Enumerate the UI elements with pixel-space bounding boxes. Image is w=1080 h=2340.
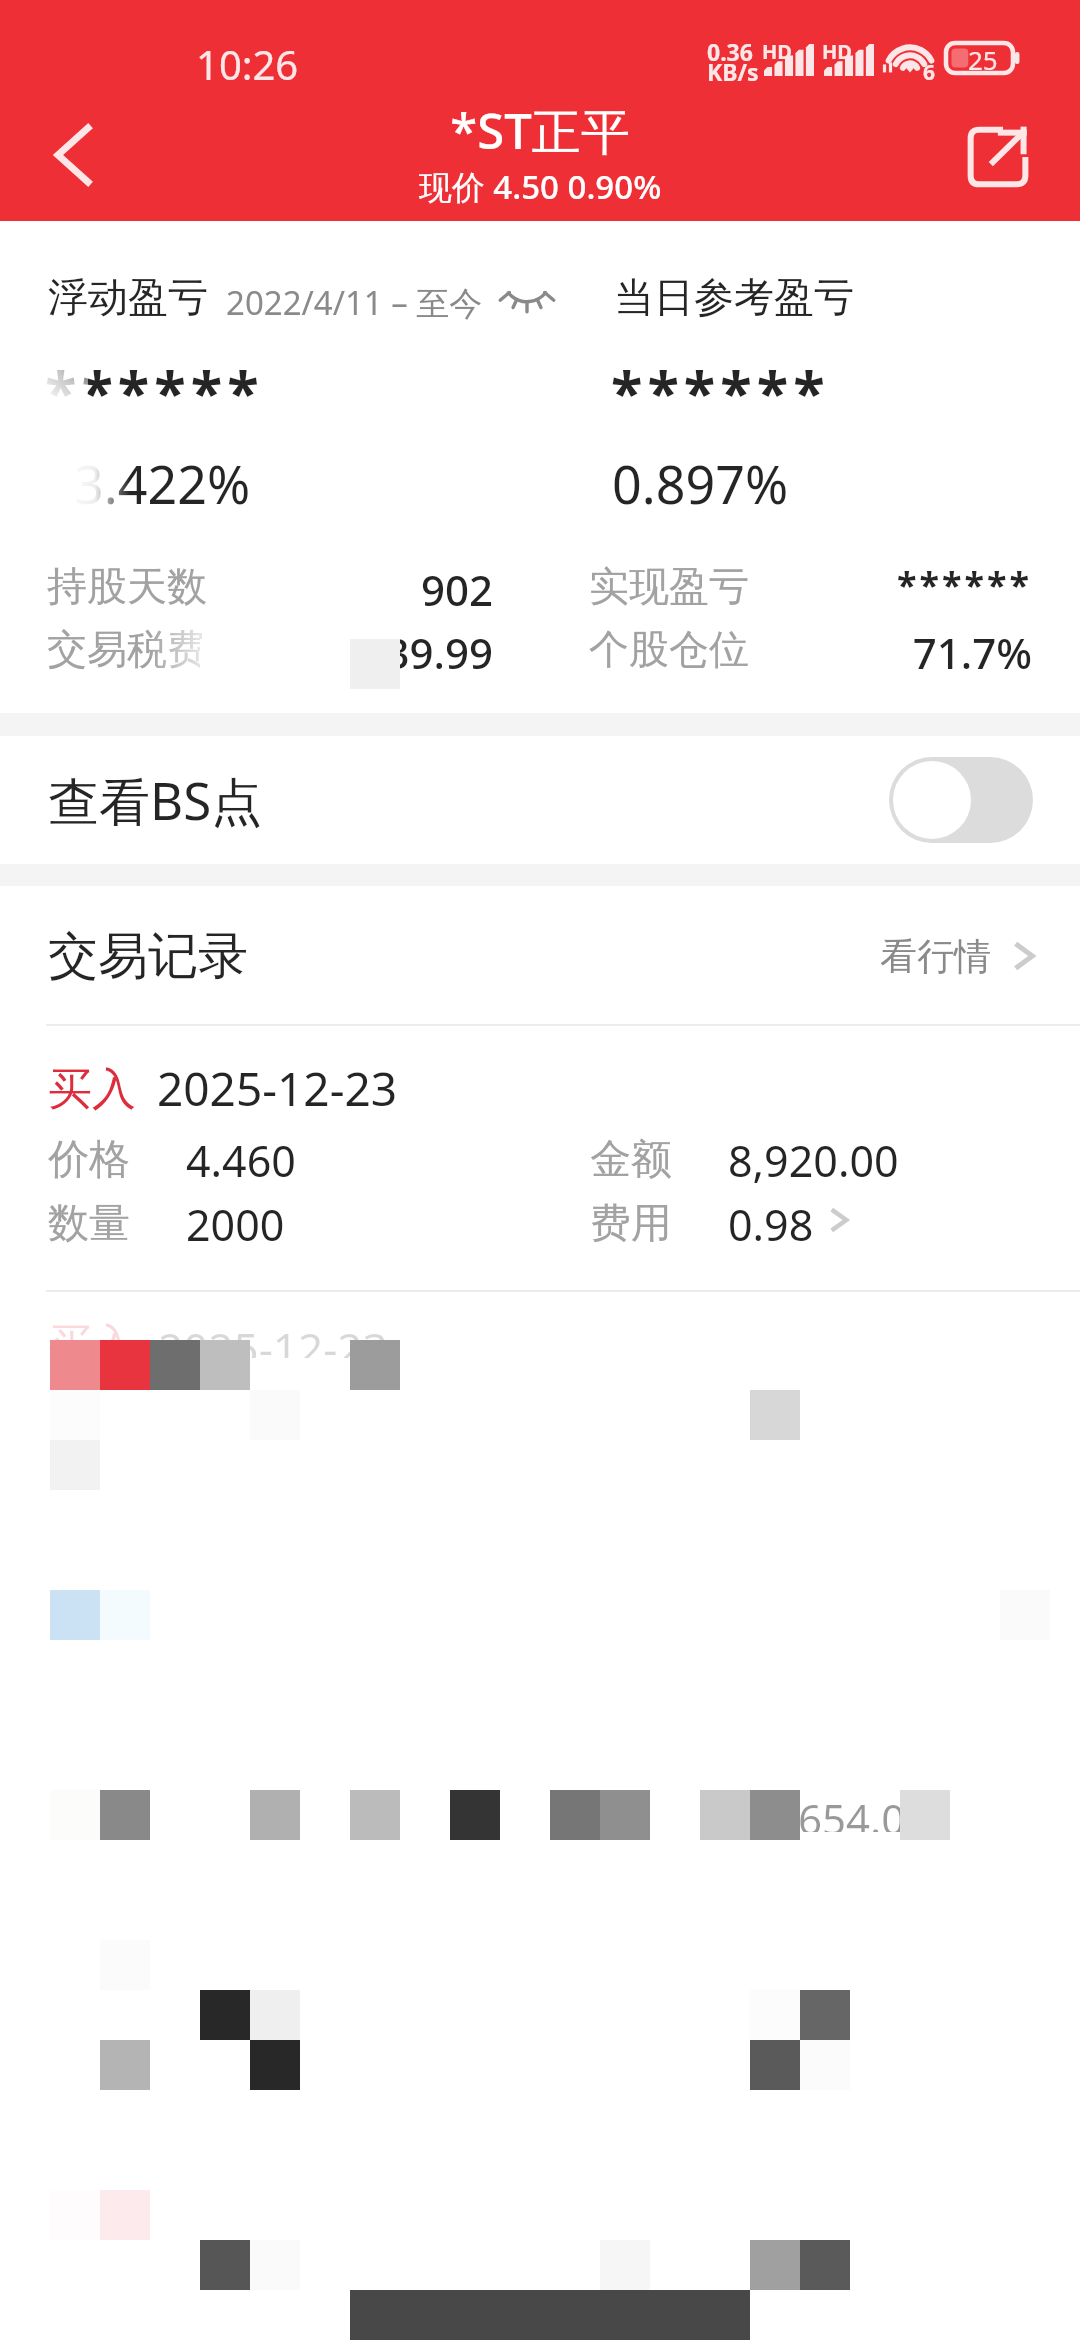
staticText: 看行情	[880, 933, 991, 980]
staticText: 39.99	[240, 624, 493, 681]
staticText: 25	[968, 42, 998, 72]
staticText: 10:26	[196, 37, 299, 91]
staticText: 71.7%	[760, 624, 1032, 681]
button[interactable]: 买入	[0, 1026, 1080, 1272]
staticText: 实现盈亏	[589, 561, 749, 611]
staticText: 浮动盈亏	[48, 272, 208, 322]
staticText: KB/s	[707, 56, 759, 87]
staticText: 2022/4/11 – 至今	[226, 280, 483, 325]
staticText: 持股天数	[47, 561, 207, 611]
button[interactable]: Hide amounts	[496, 270, 558, 322]
staticText: 价格	[48, 1134, 130, 1186]
staticText: 个股仓位	[589, 624, 749, 674]
staticText: 0.36	[707, 36, 753, 67]
staticText: ******	[760, 560, 1032, 609]
staticText: 0.98	[728, 1195, 814, 1254]
staticText: 交易记录	[48, 925, 248, 988]
staticText: 数量	[48, 1198, 130, 1250]
button[interactable]: Share	[962, 121, 1034, 193]
staticText: 4.460	[186, 1131, 296, 1190]
staticText: 3.422%	[74, 448, 251, 519]
staticText: HD	[822, 38, 852, 65]
button[interactable]: Back	[25, 105, 125, 205]
staticText: 查看BS点	[48, 765, 263, 835]
staticText: 0.897%	[612, 448, 789, 519]
staticText: 交易税费	[47, 624, 207, 674]
staticText: 2025-12-23	[158, 1318, 388, 1358]
button[interactable]: 看行情	[872, 925, 1039, 987]
staticText: 盈利654.00	[714, 1790, 930, 1832]
staticText: 买入	[48, 1318, 136, 1358]
staticText: *ST正平	[0, 97, 1080, 164]
staticText: 金额	[590, 1134, 672, 1186]
staticText: 902	[240, 561, 493, 618]
staticText: 买入	[48, 1062, 136, 1117]
staticText: 现价 4.50 0.90%	[0, 164, 1080, 209]
staticText: ******	[45, 352, 264, 431]
staticText: 2025-12-23	[157, 1057, 398, 1120]
staticText: 当日参考盈亏	[614, 272, 854, 322]
staticText: 8,920.00	[728, 1131, 899, 1190]
staticText: ******	[611, 352, 830, 431]
staticText: 6	[923, 58, 936, 87]
button[interactable]: 查看BS点	[0, 736, 1080, 864]
staticText: HD	[762, 38, 792, 65]
staticText: 2000	[186, 1195, 285, 1254]
staticText: 费用	[590, 1198, 672, 1250]
